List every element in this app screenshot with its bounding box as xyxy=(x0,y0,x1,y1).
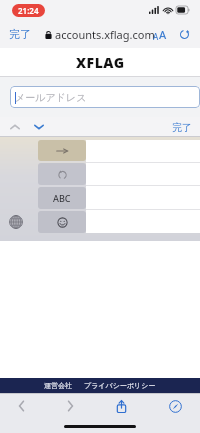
button[interactable]: Share xyxy=(112,396,131,417)
button[interactable]: 完了 xyxy=(164,118,200,137)
button[interactable]: Next field xyxy=(32,122,46,132)
button[interactable]: Reload xyxy=(177,27,192,42)
button[interactable] xyxy=(38,211,86,233)
staticText: メールアドレス xyxy=(15,91,87,104)
staticText: XFLAG xyxy=(76,53,125,72)
button[interactable]: Text size xyxy=(151,25,169,44)
button[interactable]: Previous field xyxy=(8,122,22,132)
button[interactable]: Switch keyboard xyxy=(9,215,23,229)
staticText: accounts.xflag.com xyxy=(55,27,155,42)
staticText: A xyxy=(153,31,159,42)
staticText: A xyxy=(159,27,167,42)
button[interactable]: プライバシーポリシー xyxy=(80,380,160,391)
button[interactable] xyxy=(38,163,86,185)
staticText: 運営会社 xyxy=(44,381,72,390)
staticText: 完了 xyxy=(9,27,31,41)
staticText: 完了 xyxy=(172,121,192,134)
button[interactable]: Forward xyxy=(63,396,78,416)
button[interactable]: ABC xyxy=(38,187,86,209)
button[interactable]: Back xyxy=(14,396,29,416)
button[interactable]: メールアドレス xyxy=(10,86,200,108)
button[interactable] xyxy=(38,140,86,161)
staticText: プライバシーポリシー xyxy=(84,381,156,390)
staticText: 21:24 xyxy=(18,5,39,16)
button[interactable]: 完了 xyxy=(0,23,40,45)
button[interactable]: 運営会社 xyxy=(40,380,76,391)
staticText: ABC xyxy=(53,192,71,204)
button[interactable]: Tabs xyxy=(165,396,186,417)
